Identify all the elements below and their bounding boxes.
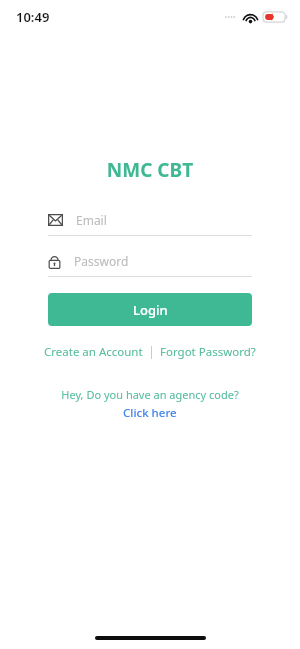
staticText: NMC CBT: [0, 157, 300, 183]
other: Email: [48, 214, 63, 226]
staticText: Create an Account: [44, 344, 143, 360]
staticText: Email: [76, 212, 107, 228]
staticText: Password: [74, 253, 129, 269]
staticText: 10:49: [16, 8, 50, 26]
staticText: Click here: [123, 405, 177, 421]
staticText: Hey, Do you have an agency code?: [0, 387, 300, 402]
staticText: Login: [133, 301, 168, 319]
staticText: Forgot Password?: [160, 344, 256, 360]
other: Password: [48, 254, 61, 269]
button[interactable]: Forgot Password?: [158, 342, 258, 362]
button[interactable]: Click here: [119, 404, 181, 422]
button[interactable]: Create an Account: [42, 342, 145, 362]
button[interactable]: Login: [48, 293, 252, 326]
